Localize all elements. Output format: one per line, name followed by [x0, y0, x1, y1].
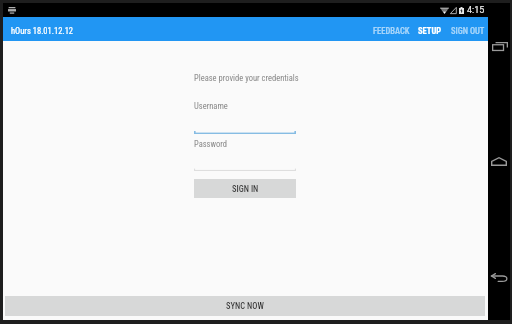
staticText: Password — [194, 139, 228, 149]
staticText: Please provide your credentials — [194, 73, 299, 83]
staticText: SIGN IN — [232, 184, 259, 194]
button[interactable]: Back — [488, 261, 510, 293]
staticText: FEEDBACK — [373, 26, 410, 36]
staticText: 4:15 — [467, 5, 485, 16]
button[interactable]: FEEDBACK — [369, 19, 414, 43]
staticText: Username — [194, 101, 228, 111]
button[interactable]: SYNC NOW — [5, 296, 485, 316]
staticText: SETUP — [418, 26, 442, 36]
button[interactable]: SIGN IN — [194, 179, 296, 198]
staticText: SIGN OUT — [451, 26, 485, 36]
staticText: SYNC NOW — [226, 301, 264, 311]
staticText: hOurs 18.01.12.12 — [11, 26, 74, 36]
button[interactable]: Recents — [488, 30, 510, 62]
button[interactable]: Home — [488, 145, 510, 177]
button[interactable]: SIGN OUT — [446, 19, 488, 43]
button[interactable]: SETUP — [414, 19, 446, 43]
